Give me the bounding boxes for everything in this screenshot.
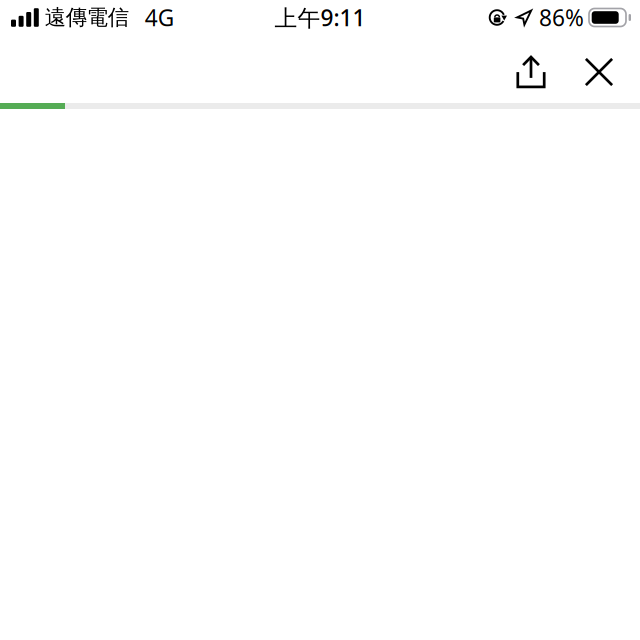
- staticText: 遠傳電信: [45, 4, 129, 31]
- staticText: 上午9:11: [274, 2, 365, 32]
- button[interactable]: Share: [497, 41, 565, 103]
- button[interactable]: Close: [565, 41, 633, 103]
- staticText: 4G: [145, 2, 175, 32]
- staticText: 86%: [539, 2, 584, 32]
